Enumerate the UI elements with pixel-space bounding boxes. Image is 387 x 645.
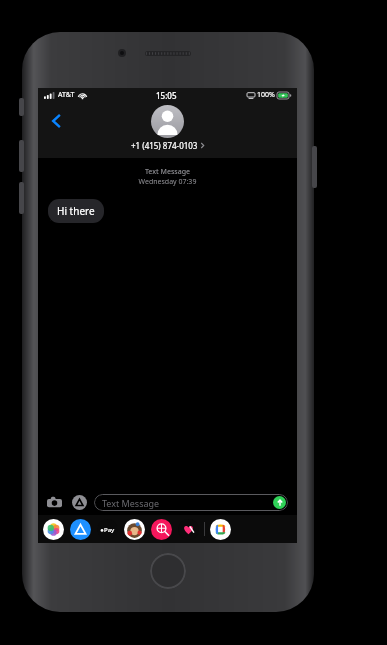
button[interactable]: Text Message xyxy=(94,494,288,511)
button[interactable]: Photos xyxy=(43,519,64,540)
staticText: +1 (415) 874-0103 xyxy=(131,140,198,151)
staticText: Wednesday 07:39 xyxy=(38,177,297,187)
staticText: 15:05 xyxy=(156,90,177,101)
button[interactable]: Hi there xyxy=(48,199,104,223)
button[interactable]: Contact avatar xyxy=(151,105,184,138)
button[interactable]: Google Photos xyxy=(210,519,231,540)
button[interactable]: Images xyxy=(151,519,172,540)
button[interactable]: App Store xyxy=(70,519,91,540)
staticText: Text Message xyxy=(38,167,297,177)
staticText: Hi there xyxy=(57,204,95,218)
button[interactable]: Apple Pay xyxy=(97,519,118,540)
button[interactable]: Send xyxy=(273,496,286,509)
staticText: AT&T xyxy=(58,90,75,100)
button[interactable]: Home xyxy=(150,553,186,589)
button[interactable]: Apps xyxy=(69,492,89,512)
staticText: Pay xyxy=(104,526,115,534)
staticText: 100% xyxy=(257,90,275,100)
button[interactable]: Memoji xyxy=(124,519,145,540)
button[interactable]: Camera xyxy=(44,492,64,512)
staticText: Text Message xyxy=(102,497,160,509)
button[interactable]: Digital Touch xyxy=(178,519,199,540)
button[interactable]: Back xyxy=(44,108,70,134)
